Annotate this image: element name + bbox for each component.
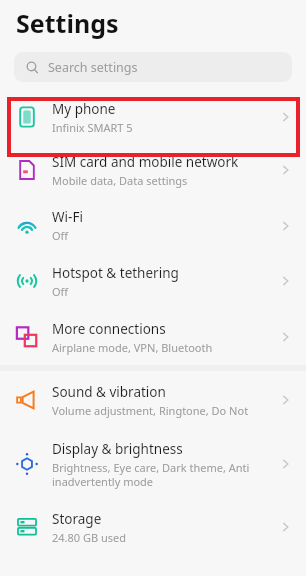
staticText: Hotspot & tethering [52, 264, 179, 282]
button[interactable]: Sound & vibration [0, 371, 306, 429]
staticText: Off [52, 228, 69, 243]
staticText: Storage [52, 510, 102, 528]
button[interactable]: Wi-Fi [0, 198, 306, 253]
staticText: Mobile data, Data settings [52, 173, 188, 188]
staticText: SIM card and mobile network [52, 153, 239, 171]
staticText: Brightness, Eye care, Dark theme, Anti i… [52, 460, 274, 489]
staticText: Display & brightness [52, 440, 183, 458]
staticText: Settings [16, 6, 119, 40]
button[interactable]: More connections [0, 309, 306, 365]
staticText: Sound & vibration [52, 383, 166, 401]
button[interactable]: Hotspot & tethering [0, 253, 306, 309]
staticText: More connections [52, 320, 166, 338]
button[interactable]: Display & brightness [0, 429, 306, 499]
button[interactable]: SIM card and mobile network [0, 142, 306, 198]
staticText: Wi-Fi [52, 208, 83, 226]
staticText: 24.80 GB used [52, 530, 127, 545]
staticText: My phone [52, 100, 116, 118]
staticText: Airplane mode, VPN, Bluetooth [52, 340, 213, 355]
button[interactable]: Search settings [14, 52, 292, 82]
button[interactable]: Storage [0, 499, 306, 555]
staticText: Infinix SMART 5 [52, 120, 133, 135]
staticText: Search settings [48, 59, 138, 76]
staticText: Off [52, 284, 69, 299]
button[interactable]: My phone [0, 92, 306, 142]
staticText: Volume adjustment, Ringtone, Do Not Dist… [52, 403, 274, 418]
